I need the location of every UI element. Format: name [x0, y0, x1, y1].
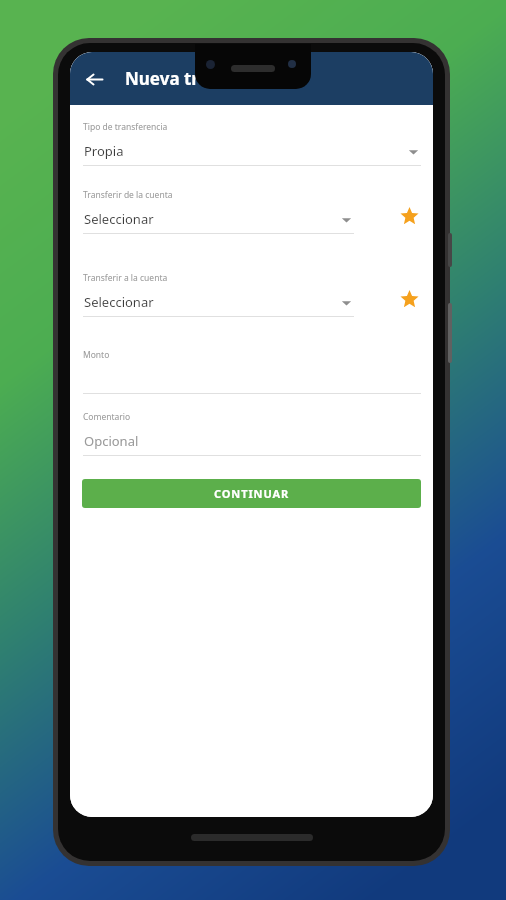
staticText: Comentario [83, 411, 131, 423]
staticText: Monto [83, 349, 110, 361]
staticText: CONTINUAR [214, 486, 290, 501]
staticText: Transferir a la cuenta [83, 272, 168, 284]
button[interactable]: Favorite [396, 203, 422, 229]
button[interactable]: Opcional [70, 430, 421, 452]
staticText: Seleccionar [84, 210, 154, 228]
button[interactable]: Seleccionar [70, 208, 354, 230]
button[interactable]: Back [75, 60, 113, 98]
staticText: Nueva transferencia [125, 67, 298, 90]
staticText: Seleccionar [84, 293, 154, 311]
staticText: Propia [84, 142, 124, 160]
staticText: Opcional [84, 432, 139, 450]
staticText: Tipo de transferencia [83, 121, 168, 133]
button[interactable]: Favorite [396, 286, 422, 312]
button[interactable]: Seleccionar [70, 291, 354, 313]
button[interactable]: CONTINUAR [82, 479, 421, 508]
staticText: Transferir de la cuenta [83, 189, 173, 201]
button[interactable]: Propia [70, 140, 421, 162]
